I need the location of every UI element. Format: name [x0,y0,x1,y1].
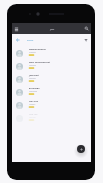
staticText: Bo Mango [29,87,40,90]
staticText: Tim Sure [29,100,39,103]
staticText: Toronto [29,64,36,67]
button[interactable]: Ann Lee [12,112,91,125]
button[interactable]: Marc Commenuceat [12,60,91,73]
button[interactable]: John Bart [12,73,91,86]
staticText: JWF [50,27,55,30]
staticText: Halifax [29,103,36,106]
staticText: Montreal [29,90,38,93]
staticText: Rating [27,39,34,42]
button[interactable]: Search [84,26,89,31]
staticText: John Bart [29,74,39,77]
staticText: Ottawa [29,77,36,80]
button[interactable]: Back [16,38,20,42]
staticText: Victoria [29,116,36,119]
staticText: Ann Lee [29,113,38,116]
button[interactable]: Add [77,145,85,153]
button[interactable]: Tim Sure [12,99,91,112]
staticText: Calgary [29,51,36,54]
button[interactable]: Filter [84,38,88,42]
staticText: Marc Commenuceat [29,61,50,64]
button[interactable]: Bo Mango [12,86,91,99]
button[interactable]: Menu [14,26,19,31]
button[interactable]: Meghan Deacon [12,47,91,60]
staticText: Meghan Deacon [29,48,46,51]
